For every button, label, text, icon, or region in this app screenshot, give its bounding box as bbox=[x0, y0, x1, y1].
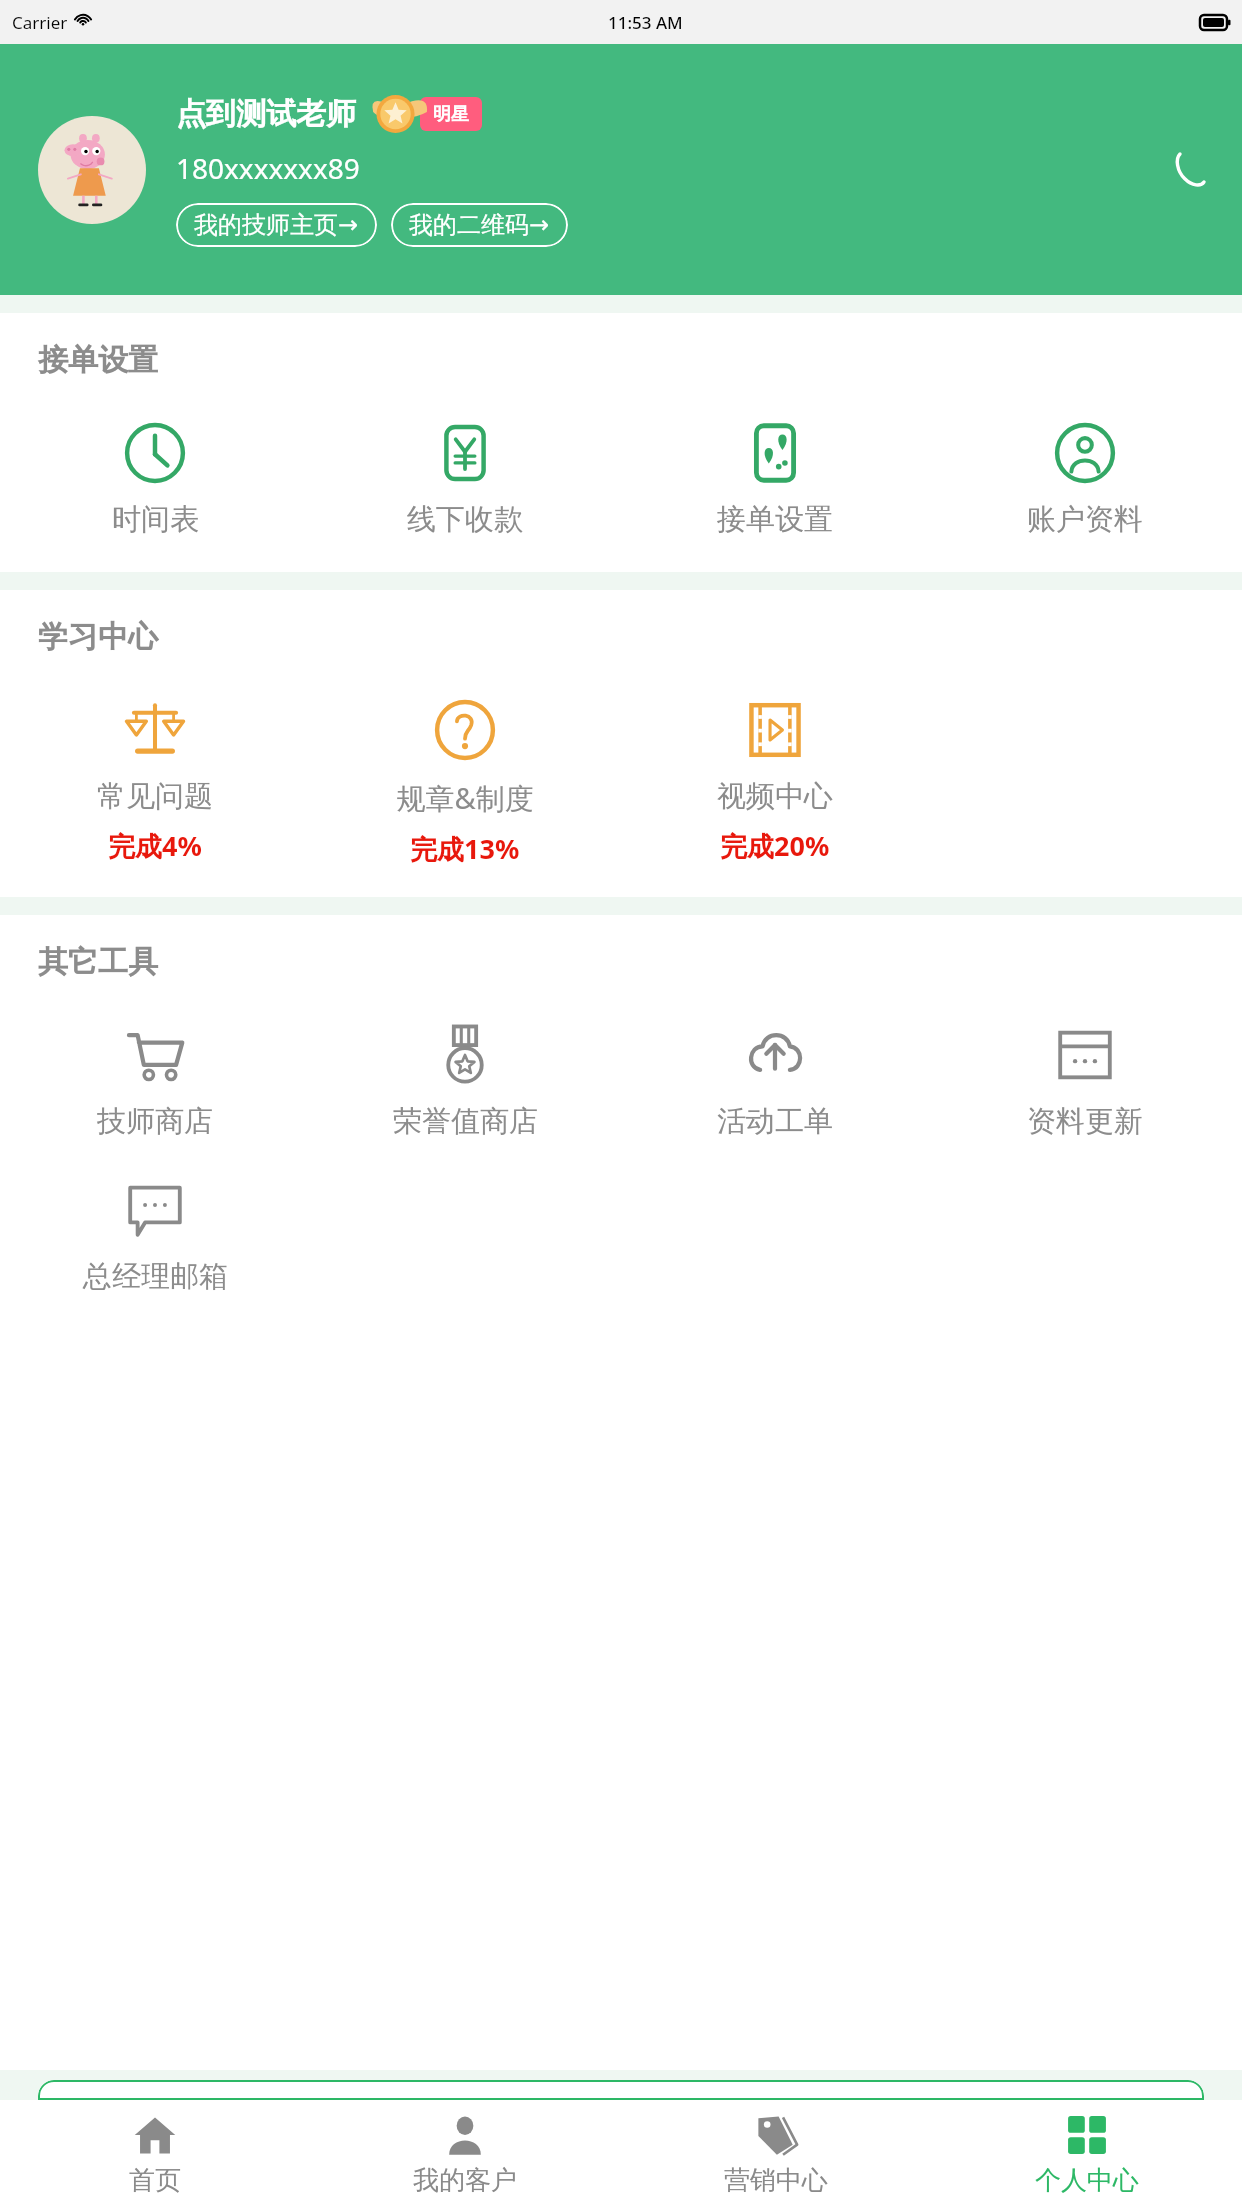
button[interactable]: 个人中心 bbox=[931, 2100, 1242, 2208]
staticText: 我的技师主页→ bbox=[194, 210, 359, 240]
button[interactable]: Call bbox=[1164, 146, 1212, 194]
staticText: 接单设置 bbox=[717, 501, 833, 538]
staticText: 个人中心 bbox=[1035, 2164, 1139, 2197]
button[interactable]: 时间表 bbox=[0, 415, 310, 544]
button[interactable]: 线下收款 bbox=[310, 415, 620, 544]
button[interactable]: 我的二维码→ bbox=[391, 203, 568, 247]
staticText: 完成4% bbox=[108, 827, 202, 864]
staticText: 学习中心 bbox=[38, 618, 158, 656]
button[interactable]: 我的技师主页→ bbox=[176, 203, 377, 247]
staticText: 荣誉值商店 bbox=[393, 1103, 538, 1140]
staticText: 活动工单 bbox=[717, 1103, 833, 1140]
staticText: 我的客户 bbox=[413, 2164, 517, 2197]
button[interactable]: 接单设置 bbox=[620, 415, 930, 544]
staticText: 资料更新 bbox=[1027, 1103, 1143, 1140]
staticText: 明星 bbox=[433, 103, 469, 126]
staticText: 接单设置 bbox=[38, 341, 158, 379]
staticText: 完成20% bbox=[720, 827, 830, 864]
staticText: 总经理邮箱 bbox=[83, 1258, 228, 1295]
staticText: 其它工具 bbox=[38, 943, 158, 981]
button[interactable]: 账户资料 bbox=[930, 415, 1240, 544]
staticText: 11:53 AM bbox=[608, 11, 683, 34]
staticText: 180xxxxxxx89 bbox=[176, 149, 360, 187]
staticText: 点到测试老师 bbox=[176, 95, 356, 133]
button[interactable]: 营销中心 bbox=[620, 2100, 931, 2208]
button[interactable]: 技师商店 bbox=[0, 1017, 310, 1146]
staticText: 完成13% bbox=[410, 830, 520, 867]
button[interactable]: 首页 bbox=[0, 2100, 310, 2208]
button[interactable] bbox=[38, 2080, 1204, 2100]
button[interactable]: 荣誉值商店 bbox=[310, 1017, 620, 1146]
staticText: 首页 bbox=[129, 2164, 181, 2197]
button[interactable]: 活动工单 bbox=[620, 1017, 930, 1146]
staticText: 视频中心 bbox=[717, 778, 833, 815]
staticText: 时间表 bbox=[112, 501, 199, 538]
staticText: 规章&制度 bbox=[396, 778, 534, 818]
button[interactable]: 资料更新 bbox=[930, 1017, 1240, 1146]
staticText: 技师商店 bbox=[97, 1103, 213, 1140]
button[interactable]: 规章&制度 bbox=[310, 692, 620, 873]
button[interactable]: Avatar bbox=[38, 116, 146, 224]
staticText: 我的二维码→ bbox=[409, 210, 550, 240]
staticText: 常见问题 bbox=[97, 778, 213, 815]
button[interactable]: 视频中心 bbox=[620, 692, 930, 870]
staticText: 账户资料 bbox=[1027, 501, 1143, 538]
staticText: Carrier bbox=[12, 11, 68, 34]
staticText: 线下收款 bbox=[407, 501, 523, 538]
button[interactable]: 我的客户 bbox=[310, 2100, 620, 2208]
button[interactable]: 总经理邮箱 bbox=[0, 1172, 310, 1301]
button[interactable]: 常见问题 bbox=[0, 692, 310, 870]
staticText: 营销中心 bbox=[724, 2164, 828, 2197]
